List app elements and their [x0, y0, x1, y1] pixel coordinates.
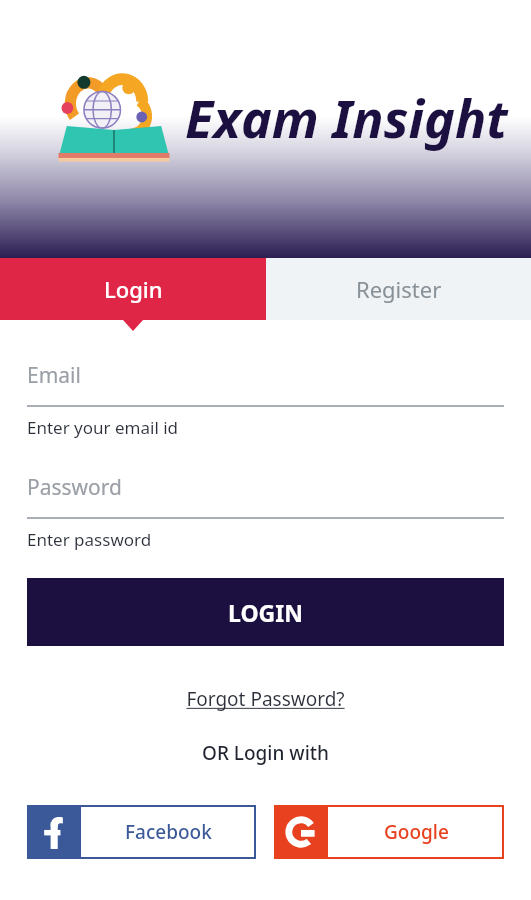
staticText: OR Login with	[27, 740, 504, 766]
button[interactable]: Sign in with Facebook	[27, 805, 256, 859]
button[interactable]: LOGIN	[27, 578, 504, 646]
staticText: Facebook	[125, 819, 212, 845]
button[interactable]: Login	[0, 258, 266, 320]
staticText: Forgot Password?	[186, 686, 345, 712]
staticText: Enter your email id	[27, 416, 179, 439]
staticText: Email	[27, 361, 81, 390]
staticText: LOGIN	[228, 597, 303, 628]
staticText: Exam Insight	[185, 82, 508, 153]
staticText: Register	[356, 274, 442, 304]
other: Sign in with Google	[284, 815, 318, 849]
button[interactable]: Sign in with Google	[274, 805, 504, 859]
button[interactable]: Register	[266, 258, 531, 320]
staticText: Google	[384, 819, 449, 845]
other: Sign in with Facebook	[37, 815, 71, 849]
staticText: Login	[104, 274, 163, 304]
staticText: Enter password	[27, 528, 152, 551]
button[interactable]: Forgot Password?	[182, 682, 349, 716]
staticText: Password	[27, 473, 122, 502]
